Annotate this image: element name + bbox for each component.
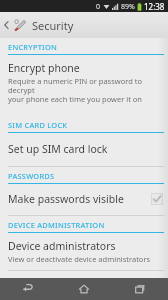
button[interactable]: Back xyxy=(0,278,56,300)
button[interactable]: Device administrators xyxy=(0,233,168,270)
button[interactable]: Recents xyxy=(112,278,168,300)
staticText: Set up SIM card lock xyxy=(8,142,108,156)
staticText: DEVICE ADMINISTRATION xyxy=(8,220,105,230)
staticText: SIM CARD LOCK xyxy=(8,120,68,130)
staticText: Require a numeric PIN or password to dec… xyxy=(8,76,163,105)
staticText: Encrypt phone xyxy=(8,61,80,75)
button[interactable]: Make passwords visible xyxy=(0,184,168,215)
button[interactable]: Encrypt phone xyxy=(0,55,168,111)
staticText: 12:38 xyxy=(144,1,165,12)
staticText: PASSWORDS xyxy=(8,171,55,181)
staticText: Device administrators xyxy=(8,239,116,253)
staticText: Security xyxy=(32,18,74,33)
staticText: Make passwords visible xyxy=(8,192,124,206)
staticText: View or deactivate device administrators xyxy=(8,254,151,264)
staticText: 0 xyxy=(96,2,101,12)
staticText: ENCRYPTION xyxy=(8,42,58,52)
button[interactable]: Set up SIM card lock xyxy=(0,133,168,166)
staticText: 89% xyxy=(121,2,135,12)
button[interactable]: Toggle xyxy=(151,193,163,205)
button[interactable]: Home xyxy=(56,278,112,300)
button[interactable]: Security xyxy=(0,12,168,38)
